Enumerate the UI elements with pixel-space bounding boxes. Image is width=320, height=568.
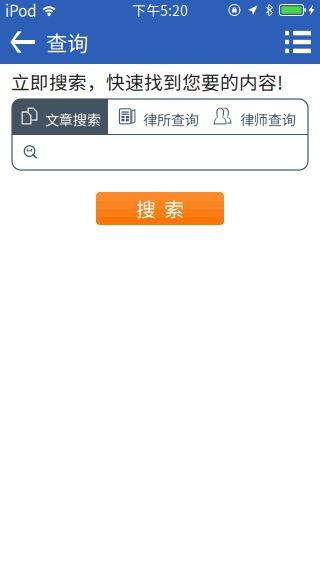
staticText: iPod — [5, 0, 37, 21]
staticText: 下午5:20 — [132, 0, 188, 20]
staticText: 查询 — [46, 27, 88, 57]
staticText: 文章搜索 — [45, 109, 101, 129]
button[interactable]: Menu — [276, 20, 320, 64]
staticText: 律师查询 — [240, 109, 296, 129]
staticText: 律所查询 — [143, 109, 199, 129]
staticText: 搜 索 — [136, 194, 184, 223]
button[interactable]: Back — [0, 20, 96, 64]
button[interactable]: 搜 索 — [96, 192, 224, 225]
button[interactable]: 律所查询 — [108, 99, 205, 134]
button[interactable]: 文章搜索 — [12, 99, 108, 134]
button[interactable]: 律师查询 — [205, 99, 308, 134]
staticText: 立即搜索，快速找到您要的内容! — [11, 68, 283, 95]
